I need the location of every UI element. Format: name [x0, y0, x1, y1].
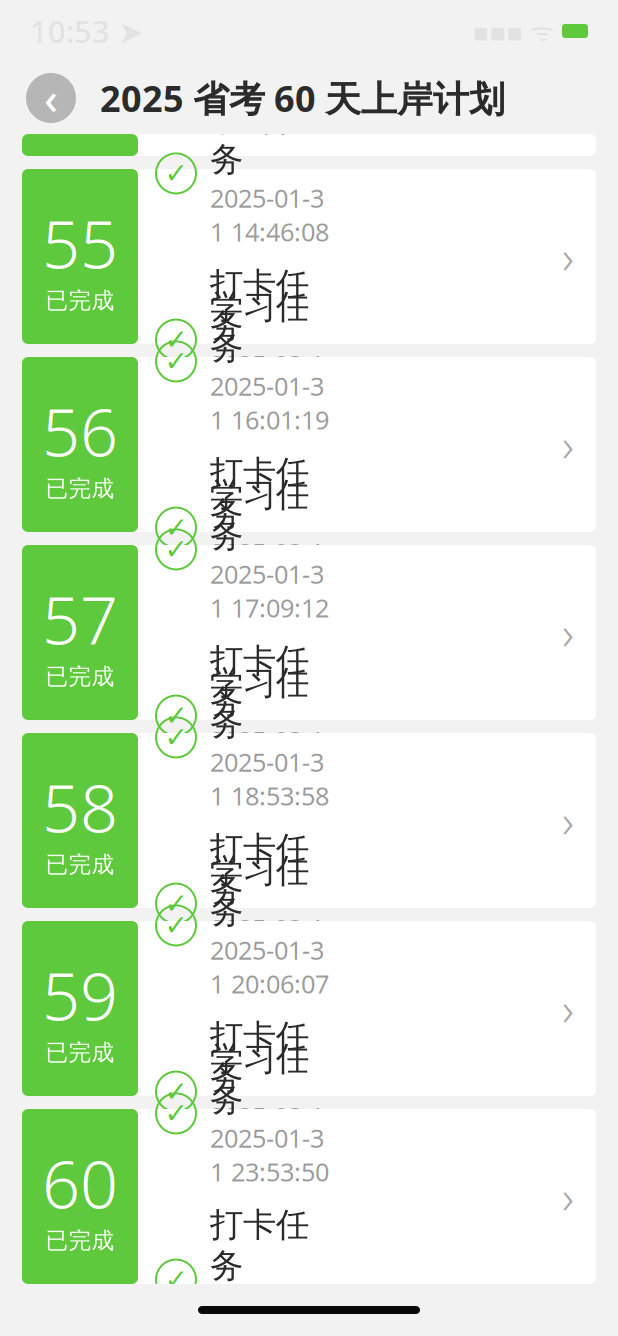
staticText: 已完成: [45, 1039, 114, 1067]
staticText: ✓: [164, 721, 187, 753]
staticText: ✓: [164, 1264, 187, 1295]
staticText: ‹: [44, 70, 58, 126]
button[interactable]: 56: [22, 357, 596, 532]
staticText: ✓: [164, 1097, 187, 1129]
staticText: 59: [42, 950, 118, 1039]
staticText: 10:53 ➤: [30, 11, 144, 51]
staticText: 55: [42, 198, 118, 287]
staticText: 打卡任务: [210, 264, 309, 346]
staticText: 57: [42, 574, 118, 663]
staticText: 打卡任务: [210, 452, 309, 534]
staticText: ›: [562, 226, 574, 287]
staticText: 2025-01-31 17:09:12: [210, 557, 329, 624]
staticText: ✓: [164, 324, 187, 355]
staticText: 2025-01-31 20:06:07: [210, 933, 329, 1000]
staticText: 2025-03-15 07:00:12: [210, 1099, 329, 1167]
staticText: ✓: [164, 909, 187, 941]
staticText: 已完成: [45, 851, 114, 879]
button[interactable]: 59: [22, 921, 596, 1096]
staticText: 打卡任务: [210, 828, 309, 910]
button[interactable]: 57: [22, 545, 596, 720]
button[interactable]: 返回: [26, 73, 76, 123]
staticText: 2025-03-11 10:08:02: [210, 347, 329, 415]
staticText: 60: [42, 1138, 118, 1227]
staticText: ▪▪▪ ᯤ: [472, 14, 554, 48]
staticText: 2025-01-31 14:46:08: [210, 181, 329, 248]
staticText: 已完成: [45, 475, 114, 503]
staticText: ✓: [164, 345, 187, 377]
staticText: 2025-01-31 23:53:50: [210, 1121, 329, 1188]
staticText: 打卡任务: [210, 1204, 309, 1286]
staticText: 已完成: [45, 663, 114, 691]
staticText: 学习任务: [210, 474, 309, 556]
button[interactable]: 60: [22, 1109, 596, 1284]
button[interactable]: 58: [22, 733, 596, 908]
staticText: ✓: [164, 533, 187, 565]
button[interactable]: 55: [22, 169, 596, 344]
staticText: 2025-01-31 16:01:19: [210, 369, 329, 436]
staticText: ›: [562, 602, 574, 663]
staticText: 2025-03-13 09:10:12: [210, 723, 329, 791]
staticText: 56: [42, 386, 118, 475]
staticText: 已完成: [45, 287, 114, 315]
staticText: 2025-03-12 08:23:59: [210, 535, 329, 603]
staticText: ›: [562, 414, 574, 475]
staticText: 学习任务: [210, 850, 309, 932]
staticText: 学习任务: [210, 1038, 309, 1120]
staticText: ›: [562, 1166, 574, 1227]
staticText: 学习任务: [210, 98, 309, 180]
staticText: 2025-03-14 08:18:19: [210, 911, 329, 979]
staticText: 58: [42, 762, 118, 851]
staticText: ✓: [164, 512, 187, 543]
staticText: 2025 省考 60 天上岸计划: [100, 74, 505, 122]
staticText: 学习任务: [210, 662, 309, 744]
staticText: ›: [562, 790, 574, 851]
staticText: 打卡任务: [210, 640, 309, 722]
staticText: 2025-03-16 00:05:02: [210, 1287, 329, 1336]
staticText: 打卡任务: [210, 1016, 309, 1098]
staticText: 2025-01-31 18:53:58: [210, 745, 329, 812]
staticText: 已完成: [45, 1227, 114, 1255]
staticText: 学习任务: [210, 286, 309, 368]
staticText: ✓: [164, 700, 187, 731]
staticText: ✓: [164, 157, 187, 189]
staticText: ✓: [164, 888, 187, 919]
staticText: ›: [562, 978, 574, 1039]
staticText: ✓: [164, 1076, 187, 1107]
